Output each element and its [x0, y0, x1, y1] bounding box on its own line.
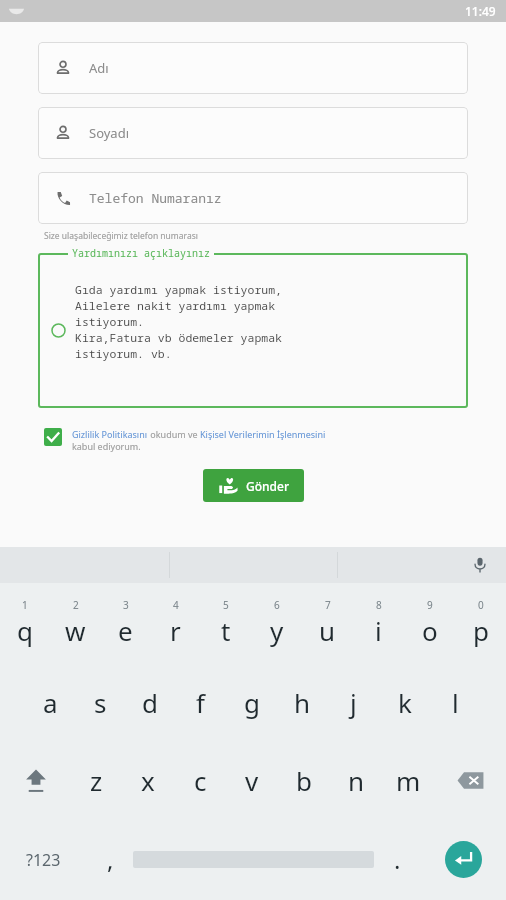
staticText: 6 — [274, 598, 280, 612]
staticText: g — [244, 685, 260, 720]
button[interactable]: n — [330, 741, 382, 819]
staticText: j — [350, 685, 357, 720]
button[interactable]: a — [25, 663, 75, 741]
button[interactable]: 3 — [100, 583, 150, 663]
button[interactable]: Gıda yardımı yapmak istiyorum, — [38, 253, 468, 408]
staticText: istiyorum. — [75, 314, 144, 330]
staticText: n — [348, 763, 365, 798]
staticText: 5 — [223, 598, 229, 612]
button[interactable]: 5 — [200, 583, 251, 663]
staticText: Kira,Fatura vb ödemeler yapmak — [75, 330, 282, 346]
staticText: x — [141, 763, 155, 798]
staticText: p — [473, 613, 489, 648]
button[interactable]: m — [382, 741, 434, 819]
staticText: Adı — [89, 59, 109, 77]
button[interactable]: Gizlilik Politikasını — [44, 428, 468, 452]
button[interactable]: 7 — [302, 583, 353, 663]
button[interactable]: z — [71, 741, 122, 819]
staticText: 1 — [22, 598, 28, 612]
button[interactable]: Adı — [38, 42, 468, 94]
button[interactable]: d — [125, 663, 175, 741]
button[interactable]: Telefon Numaranız — [38, 172, 468, 224]
staticText: 2 — [73, 598, 79, 612]
button[interactable]: Soyadı — [38, 107, 468, 159]
staticText: e — [118, 613, 133, 648]
button[interactable]: b — [278, 741, 330, 819]
button[interactable]: Shift — [0, 741, 71, 819]
staticText: k — [398, 685, 412, 720]
staticText: b — [296, 763, 312, 798]
button[interactable]: l — [430, 663, 481, 741]
button[interactable]: 9 — [404, 583, 455, 663]
staticText: istiyorum. vb. — [75, 346, 172, 362]
staticText: v — [245, 763, 259, 798]
button[interactable]: h — [277, 663, 328, 741]
staticText: 4 — [173, 598, 179, 612]
button[interactable]: s — [75, 663, 125, 741]
staticText: Yardımınızı açıklayınız — [72, 246, 210, 260]
staticText: Ailelere nakit yardımı yapmak — [75, 298, 276, 314]
staticText: , — [107, 843, 114, 876]
staticText: r — [170, 613, 181, 648]
staticText: a — [43, 685, 58, 720]
staticText: s — [94, 685, 107, 720]
button[interactable]: f — [175, 663, 226, 741]
staticText: 11:49 — [465, 3, 496, 19]
staticText: q — [17, 613, 33, 648]
button[interactable]: ?123 — [0, 819, 87, 900]
button[interactable]: g — [226, 663, 277, 741]
staticText: Size ulaşabileceğimiz telefon numarası — [44, 230, 198, 242]
staticText: h — [294, 685, 311, 720]
button[interactable]: 8 — [353, 583, 404, 663]
staticText: kabul ediyorum. — [72, 440, 141, 452]
button[interactable]: Space — [133, 841, 374, 878]
button[interactable]: Gönder — [203, 469, 304, 502]
staticText: Gıda yardımı yapmak istiyorum, — [75, 282, 282, 298]
button[interactable]: 4 — [150, 583, 200, 663]
staticText: i — [375, 613, 382, 648]
button[interactable]: 6 — [251, 583, 302, 663]
button[interactable]: , — [87, 819, 133, 900]
staticText: l — [452, 685, 459, 720]
button[interactable]: x — [122, 741, 174, 819]
button[interactable]: 2 — [50, 583, 100, 663]
button[interactable]: . — [374, 819, 420, 900]
staticText: okudum ve — [148, 428, 200, 440]
staticText: Soyadı — [89, 124, 130, 142]
staticText: o — [422, 613, 438, 648]
staticText: Kişisel Verilerimin İşlenmesini — [200, 428, 326, 440]
staticText: m — [396, 763, 421, 798]
staticText: t — [221, 613, 231, 648]
staticText: 3 — [123, 598, 129, 612]
staticText: . — [394, 843, 401, 876]
button[interactable]: 1 — [0, 583, 50, 663]
staticText: 8 — [376, 598, 382, 612]
staticText: z — [90, 763, 103, 798]
staticText: Gizlilik Politikasını — [72, 428, 148, 440]
staticText: w — [65, 613, 86, 648]
button[interactable]: Voice input — [468, 553, 492, 577]
staticText: 0 — [478, 598, 484, 612]
button[interactable]: Enter — [420, 819, 506, 900]
staticText: ?123 — [26, 849, 61, 871]
button[interactable]: Backspace — [434, 741, 506, 819]
button[interactable]: k — [379, 663, 430, 741]
button[interactable]: c — [174, 741, 226, 819]
staticText: 9 — [427, 598, 433, 612]
staticText: u — [319, 613, 336, 648]
staticText: Gönder — [246, 478, 289, 494]
staticText: Telefon Numaranız — [89, 189, 222, 207]
staticText: f — [196, 685, 205, 720]
button[interactable]: 0 — [455, 583, 506, 663]
staticText: 7 — [325, 598, 331, 612]
staticText: y — [270, 613, 284, 648]
button[interactable]: j — [328, 663, 379, 741]
staticText: c — [194, 763, 207, 798]
button[interactable]: v — [226, 741, 278, 819]
staticText: d — [142, 685, 158, 720]
